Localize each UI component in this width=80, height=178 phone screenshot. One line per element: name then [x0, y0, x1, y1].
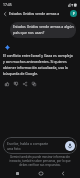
button[interactable]: Account: [70, 10, 77, 17]
button[interactable]: Bad response: [11, 79, 20, 88]
button[interactable]: Back: [58, 169, 67, 178]
button[interactable]: Home: [36, 169, 45, 178]
button[interactable]: Share: [20, 79, 29, 88]
button[interactable]: Good response: [2, 79, 11, 88]
staticText: 17:45: [3, 2, 12, 7]
button[interactable]: Back: [0, 9, 9, 18]
button[interactable]: Copy: [29, 79, 38, 88]
button[interactable]: Estados Unidos vende armas a algún país …: [10, 22, 76, 38]
staticText: Estados Unidos vende armas a algún: [9, 11, 68, 16]
staticText: Gemini también puede mostrar información…: [9, 155, 71, 167]
staticText: Estados Unidos vende armas a algún país …: [13, 24, 74, 35]
button[interactable]: Recent apps: [13, 169, 22, 178]
button[interactable]: Voice input: [65, 141, 75, 151]
staticText: obtener información actualizada, usa la: [3, 65, 68, 70]
staticText: El conflicto entre Israel y Gaza es comp…: [3, 53, 73, 58]
staticText: y con muchos antecedentes. Si quieres: [3, 59, 67, 64]
staticText: Escribe, habla o comparte una foto: [7, 141, 65, 151]
staticText: búsqueda de Google.: [3, 71, 39, 76]
button[interactable]: Escribe, habla o comparte una foto: [3, 137, 77, 154]
staticText: F: [73, 11, 75, 16]
